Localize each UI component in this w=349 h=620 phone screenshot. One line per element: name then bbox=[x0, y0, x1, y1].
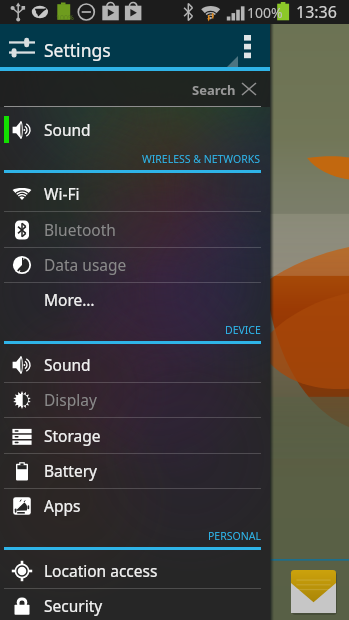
staticText: Bluetooth bbox=[44, 219, 116, 240]
button[interactable]: More… bbox=[0, 282, 270, 317]
button[interactable]: Battery bbox=[0, 453, 270, 488]
staticText: Battery bbox=[44, 460, 98, 481]
staticText: WIRELESS & NETWORKS bbox=[142, 152, 261, 166]
button[interactable]: Location access bbox=[0, 553, 270, 588]
staticText: PERSONAL bbox=[208, 529, 261, 543]
staticText: Data usage bbox=[44, 254, 127, 275]
staticText: Security bbox=[44, 595, 103, 616]
button[interactable]: Apps bbox=[0, 488, 270, 523]
staticText: 100% bbox=[56, 13, 74, 23]
staticText: Search bbox=[192, 81, 236, 99]
button[interactable]: Data usage bbox=[0, 247, 270, 282]
staticText: Location access bbox=[44, 560, 158, 581]
button[interactable]: Email bbox=[291, 570, 336, 613]
button[interactable]: Wi-Fi bbox=[0, 176, 270, 211]
button[interactable]: Sound bbox=[0, 112, 270, 147]
button[interactable]: More options bbox=[236, 24, 266, 67]
staticText: 100% bbox=[247, 3, 283, 22]
staticText: Display bbox=[44, 389, 97, 410]
staticText: DEVICE bbox=[225, 323, 261, 337]
button[interactable]: Security bbox=[0, 588, 270, 620]
button[interactable]: Storage bbox=[0, 418, 270, 453]
button[interactable]: Settings bbox=[0, 24, 270, 67]
staticText: Sound bbox=[44, 119, 91, 140]
button[interactable]: Search bbox=[0, 71, 270, 107]
staticText: More… bbox=[44, 289, 95, 310]
staticText: 13:36 bbox=[296, 1, 337, 23]
button[interactable]: Bluetooth bbox=[0, 212, 270, 247]
button[interactable]: Display bbox=[0, 382, 270, 417]
staticText: Settings bbox=[44, 38, 111, 62]
staticText: Wi-Fi bbox=[44, 183, 80, 204]
staticText: Apps bbox=[44, 495, 81, 516]
staticText: Sound bbox=[44, 354, 91, 375]
button[interactable]: Close search bbox=[238, 71, 260, 107]
button[interactable]: Sound bbox=[0, 347, 270, 382]
staticText: Storage bbox=[44, 425, 101, 446]
